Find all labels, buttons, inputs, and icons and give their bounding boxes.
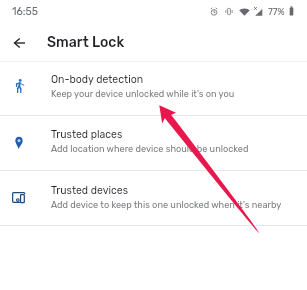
button[interactable]: Trusted devices <box>0 173 307 226</box>
staticText: Keep your device unlocked while it's on … <box>51 88 235 99</box>
staticText: 77% <box>268 6 285 17</box>
staticText: Smart Lock <box>47 34 125 51</box>
staticText: Add location where device should be unlo… <box>51 143 249 154</box>
staticText: 16:55 <box>12 5 38 17</box>
staticText: Trusted places <box>51 128 123 140</box>
button[interactable]: Trusted places <box>0 117 307 170</box>
staticText: Add device to keep this one unlocked whe… <box>51 199 282 210</box>
staticText: Trusted devices <box>51 184 129 196</box>
button[interactable]: On-body detection <box>0 62 307 115</box>
staticText: On-body detection <box>51 73 144 85</box>
button[interactable]: Back <box>0 23 38 61</box>
